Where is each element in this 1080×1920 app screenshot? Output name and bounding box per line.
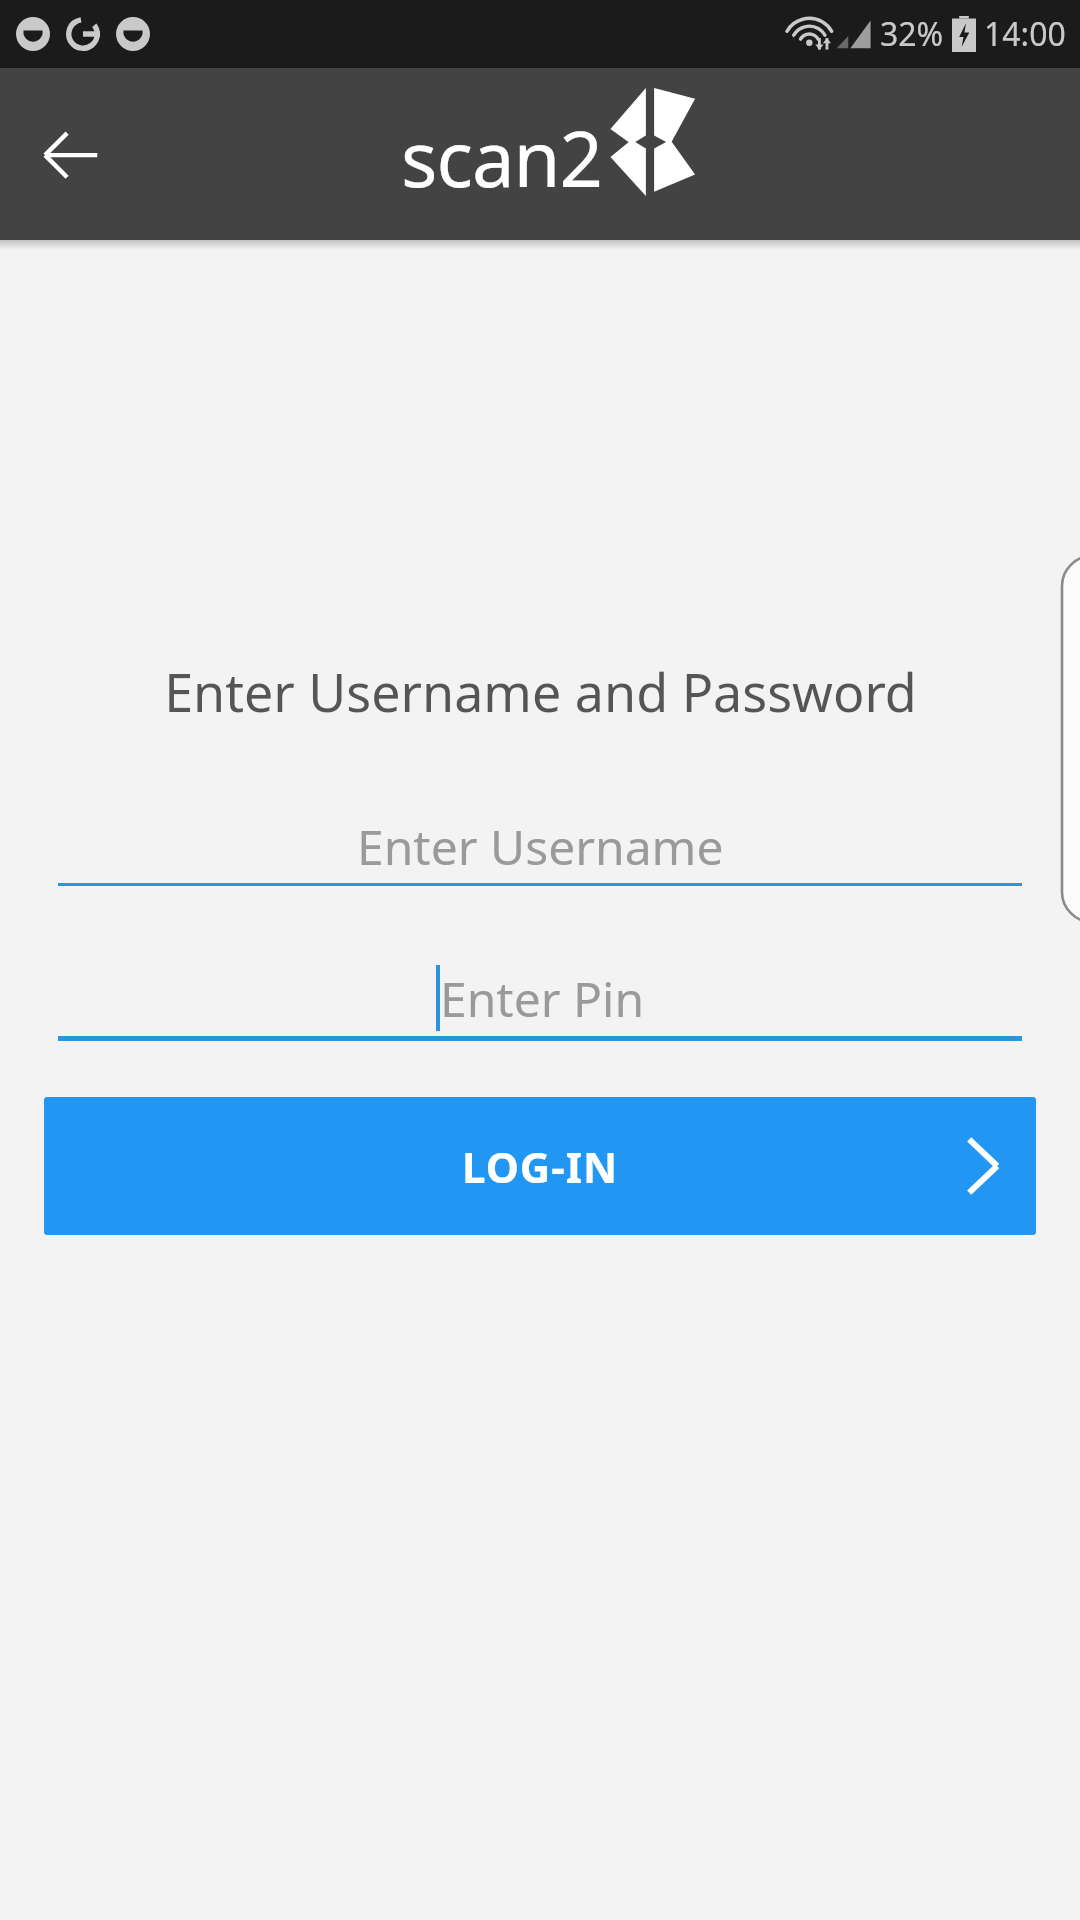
staticText: LOG-IN [462, 1138, 619, 1195]
staticText: 14:00 [984, 12, 1066, 56]
button[interactable]: Back [22, 106, 118, 202]
button[interactable]: Enter Username [58, 809, 1022, 886]
staticText: 32% [880, 12, 944, 56]
button[interactable]: LOG-IN [44, 1097, 1036, 1235]
staticText: scan2 [401, 106, 602, 210]
staticText: Enter Username and Password [164, 656, 917, 727]
button[interactable]: Enter Pin [58, 960, 1022, 1041]
staticText: Enter Username [357, 814, 724, 879]
staticText: Enter Pin [440, 966, 645, 1031]
